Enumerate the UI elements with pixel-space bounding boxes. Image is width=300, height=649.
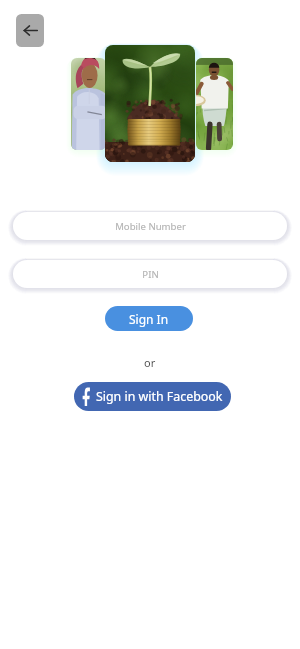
staticText: Sign in with Facebook <box>96 388 223 405</box>
button[interactable]: Sign in with Facebook <box>74 382 231 411</box>
staticText: Sign In <box>129 311 169 327</box>
button[interactable]: Sign In <box>105 306 193 331</box>
staticText: or <box>144 355 156 370</box>
staticText: PIN <box>142 268 159 281</box>
button[interactable]: PIN <box>13 260 287 288</box>
button[interactable]: Mobile Number <box>13 212 287 240</box>
staticText: Mobile Number <box>115 220 186 233</box>
button[interactable]: Back <box>16 14 44 47</box>
